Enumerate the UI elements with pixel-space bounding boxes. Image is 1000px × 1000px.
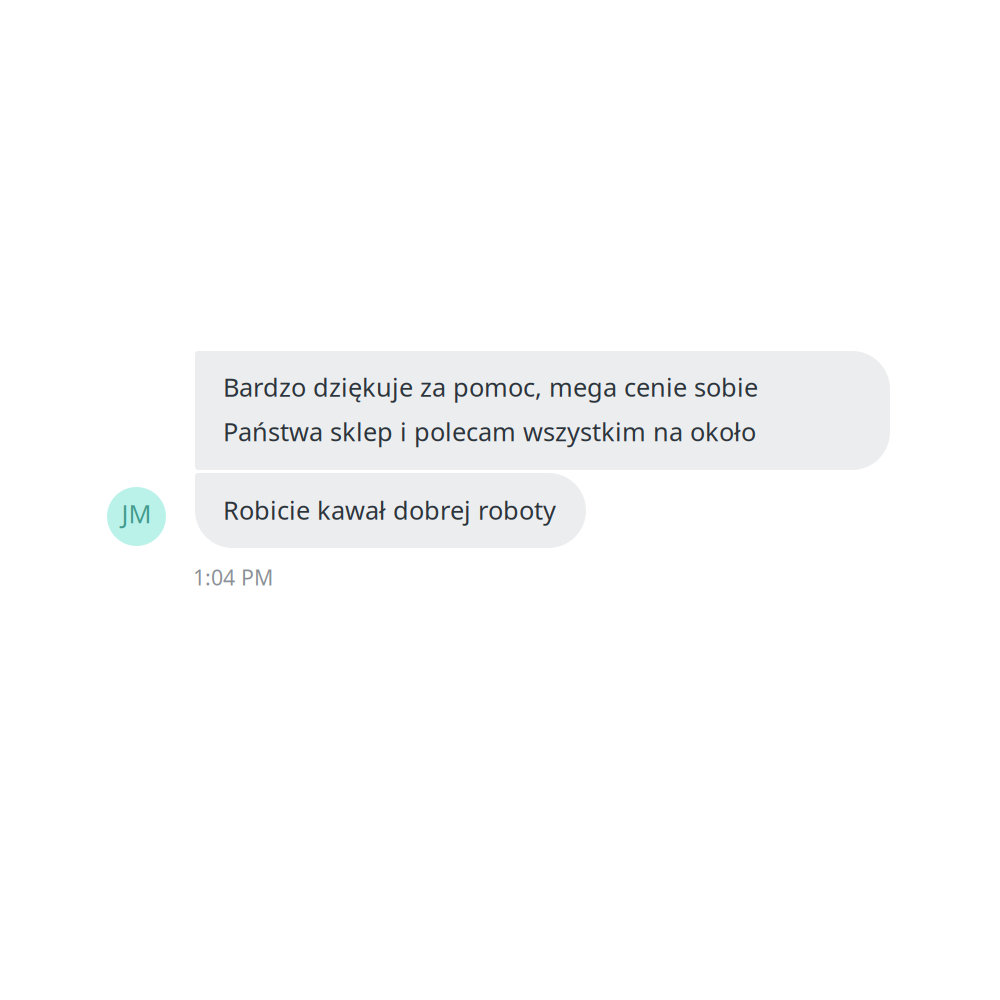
staticText: Robicie kawał dobrej roboty — [223, 493, 556, 527]
staticText: Państwa sklep i polecam wszystkim na oko… — [223, 415, 756, 448]
staticText: JM — [121, 497, 151, 530]
staticText: Bardzo dziękuje za pomoc, mega cenie sob… — [223, 370, 758, 404]
staticText: 1:04 PM — [193, 563, 273, 591]
button[interactable]: Robicie kawał dobrej roboty — [195, 473, 586, 548]
button[interactable]: Bardzo dziękuje za pomoc, mega cenie sob… — [195, 351, 890, 470]
button[interactable]: Jan M., sender profile — [107, 487, 166, 546]
